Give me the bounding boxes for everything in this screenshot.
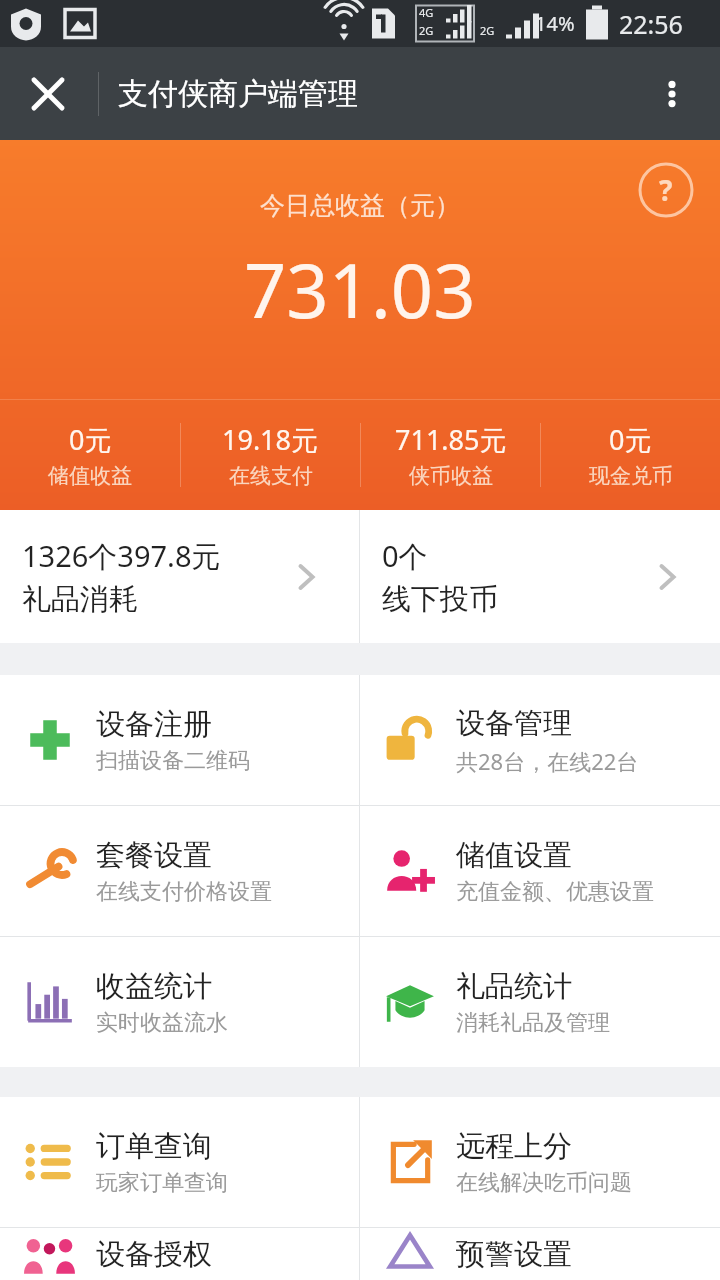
staticText: 套餐设置 xyxy=(96,837,212,874)
staticText: 预警设置 xyxy=(456,1236,572,1273)
staticText: 2G xyxy=(480,23,495,38)
button[interactable]: 设备授权 xyxy=(0,1228,359,1280)
button[interactable]: 设备管理 xyxy=(360,675,720,805)
staticText: 支付侠商户端管理 xyxy=(118,75,358,113)
button[interactable]: 0个 xyxy=(360,510,720,643)
staticText: 设备授权 xyxy=(96,1236,212,1273)
staticText: 22:56 xyxy=(619,7,683,41)
staticText: 消耗礼品及管理 xyxy=(456,1009,610,1037)
staticText: 储值收益 xyxy=(48,463,132,489)
staticText: 礼品统计 xyxy=(456,968,572,1005)
staticText: ? xyxy=(659,171,673,209)
button[interactable]: 0元 xyxy=(0,400,180,510)
staticText: 14% xyxy=(535,10,575,37)
staticText: 0元 xyxy=(609,421,652,458)
button[interactable]: 711.85元 xyxy=(361,400,540,510)
staticText: 设备管理 xyxy=(456,705,572,742)
button[interactable]: 订单查询 xyxy=(0,1097,359,1227)
staticText: 玩家订单查询 xyxy=(96,1169,228,1197)
staticText: 线下投币 xyxy=(382,581,498,618)
staticText: 今日总收益（元） xyxy=(260,190,460,221)
staticText: 订单查询 xyxy=(96,1128,212,1165)
staticText: 711.85元 xyxy=(395,421,507,458)
staticText: 731.03 xyxy=(244,239,476,340)
button[interactable]: Close xyxy=(12,58,84,130)
staticText: 储值设置 xyxy=(456,837,572,874)
staticText: 共28台，在线22台 xyxy=(456,746,639,776)
button[interactable]: 储值设置 xyxy=(360,806,720,936)
button[interactable]: 礼品统计 xyxy=(360,937,720,1067)
button[interactable]: 套餐设置 xyxy=(0,806,359,936)
staticText: 实时收益流水 xyxy=(96,1009,228,1037)
staticText: 0个 xyxy=(382,536,428,576)
staticText: 现金兑币 xyxy=(589,463,673,489)
button[interactable]: 19.18元 xyxy=(181,400,360,510)
staticText: 在线支付 xyxy=(229,463,313,489)
staticText: 0元 xyxy=(69,421,112,458)
button[interactable]: 远程上分 xyxy=(360,1097,720,1227)
staticText: 19.18元 xyxy=(222,421,319,458)
button[interactable]: 预警设置 xyxy=(360,1228,720,1280)
button[interactable]: 收益统计 xyxy=(0,937,359,1067)
staticText: 远程上分 xyxy=(456,1128,572,1165)
staticText: 侠币收益 xyxy=(409,463,493,489)
staticText: 扫描设备二维码 xyxy=(96,747,250,775)
staticText: 礼品消耗 xyxy=(22,581,138,618)
staticText: 在线支付价格设置 xyxy=(96,878,272,906)
button[interactable]: 1326个397.8元 xyxy=(0,510,359,643)
button[interactable]: Help xyxy=(638,162,694,218)
button[interactable]: 设备注册 xyxy=(0,675,359,805)
staticText: 设备注册 xyxy=(96,706,212,743)
staticText: 1326个397.8元 xyxy=(22,536,221,576)
staticText: 收益统计 xyxy=(96,968,212,1005)
staticText: 2G xyxy=(419,23,434,38)
staticText: 4G xyxy=(419,5,434,20)
button[interactable]: More options xyxy=(636,58,708,130)
staticText: 在线解决吃币问题 xyxy=(456,1169,632,1197)
button[interactable]: 0元 xyxy=(541,400,720,510)
staticText: 充值金额、优惠设置 xyxy=(456,878,654,906)
